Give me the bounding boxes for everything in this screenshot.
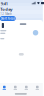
staticText: Start focus [1, 17, 15, 20]
button[interactable]: Library [21, 83, 32, 92]
staticText: Today [0, 6, 12, 12]
staticText: 9:41 [1, 1, 8, 6]
staticText: 12 March [0, 12, 12, 16]
button[interactable]: Home [0, 83, 10, 92]
button[interactable]: Start focus [0, 16, 16, 21]
button[interactable]: Profile [32, 83, 43, 92]
button[interactable]: Search [10, 83, 21, 92]
